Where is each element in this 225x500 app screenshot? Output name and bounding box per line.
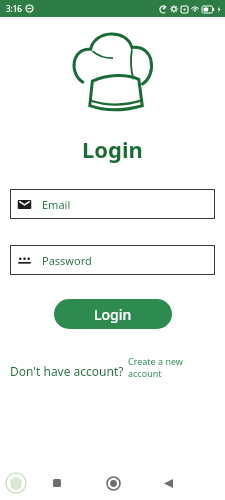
staticText: Email [42,197,71,212]
button[interactable]: Home [101,471,125,495]
staticText: Login [94,305,132,324]
staticText: Create a new account [128,355,215,379]
button[interactable]: Login [54,299,172,329]
button[interactable]: Back [157,472,179,494]
staticText: Don't have account? [10,363,124,379]
button[interactable]: Password [10,245,215,275]
button[interactable]: Recents [46,472,68,494]
button[interactable]: Create a new account [128,355,215,379]
button[interactable]: Email [10,189,215,219]
staticText: 3:16 [6,3,22,14]
staticText: Login [82,134,143,164]
button[interactable]: Security badge [5,472,27,494]
staticText: Password [42,253,92,268]
